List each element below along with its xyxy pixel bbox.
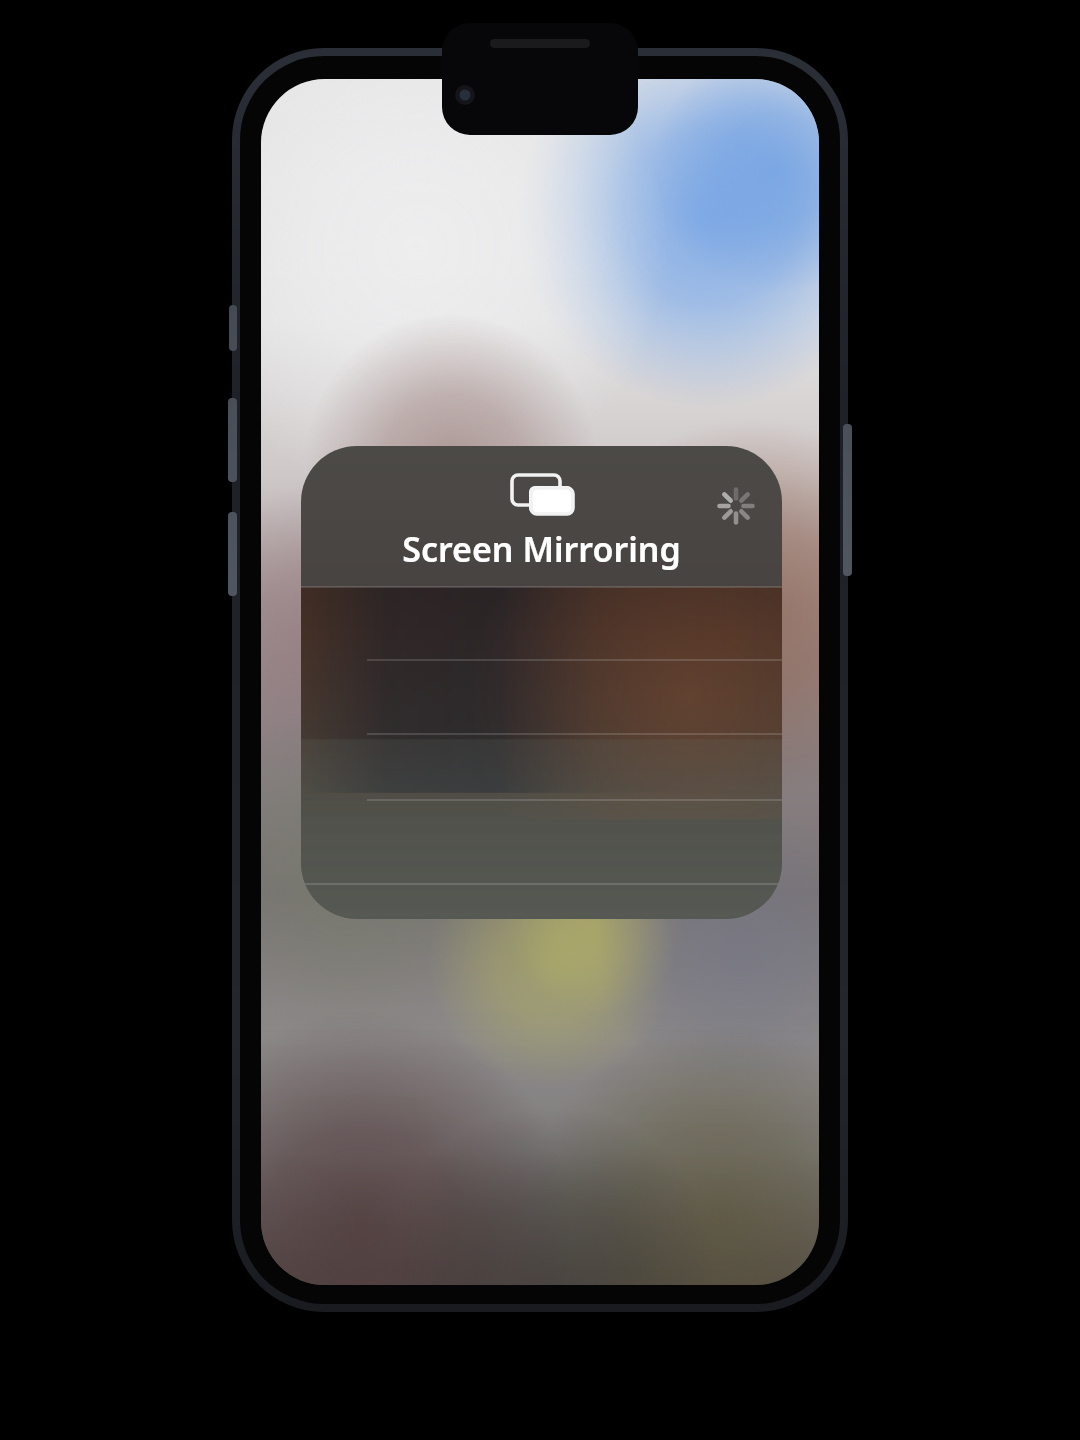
button[interactable] (301, 734, 782, 800)
button[interactable]: Screen Mirroring (301, 446, 782, 587)
button[interactable]: Searching for devices (700, 470, 772, 542)
staticText: Screen Mirroring (402, 526, 681, 572)
button[interactable] (301, 800, 782, 884)
button[interactable] (301, 660, 782, 734)
button[interactable] (301, 884, 782, 919)
button[interactable] (301, 587, 782, 660)
